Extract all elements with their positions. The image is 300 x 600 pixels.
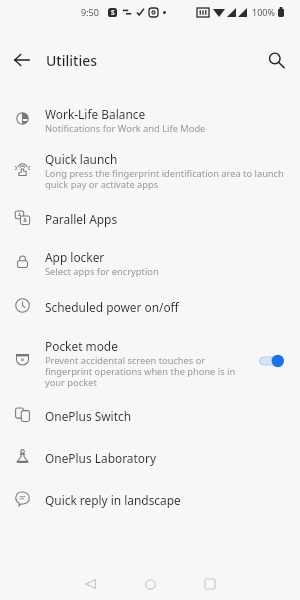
- staticText: Notifications for Work and Life Mode: [45, 122, 206, 135]
- button[interactable]: Pocket mode: [0, 326, 300, 395]
- staticText: Utilities: [46, 51, 98, 70]
- button[interactable]: Parallel Apps: [0, 200, 300, 238]
- button[interactable]: Scheduled power on/off: [0, 288, 300, 326]
- staticText: Pocket mode: [45, 338, 118, 354]
- staticText: OnePlus Switch: [45, 408, 132, 424]
- button[interactable]: Back: [6, 44, 38, 76]
- button[interactable]: Search: [260, 44, 292, 76]
- staticText: Parallel Apps: [45, 211, 118, 227]
- staticText: Quick launch: [45, 151, 118, 167]
- staticText: OnePlus Laboratory: [45, 450, 156, 466]
- staticText: Work-Life Balance: [45, 106, 146, 122]
- button[interactable]: Work-Life Balance: [0, 99, 300, 141]
- button[interactable]: OnePlus Switch: [0, 395, 300, 437]
- staticText: 9:50: [81, 6, 99, 18]
- staticText: 100%: [252, 6, 275, 18]
- button[interactable]: Pocket mode toggle: [259, 354, 291, 368]
- button[interactable]: Recent apps: [195, 569, 225, 599]
- staticText: S: [111, 8, 115, 17]
- staticText: App locker: [45, 249, 105, 265]
- button[interactable]: Home: [135, 569, 165, 599]
- button[interactable]: Back: [75, 569, 105, 599]
- button[interactable]: Quick launch: [0, 141, 300, 200]
- button[interactable]: OnePlus Laboratory: [0, 437, 300, 479]
- button[interactable]: Quick reply in landscape: [0, 479, 300, 521]
- staticText: Long press the fingerprint identificatio…: [45, 167, 287, 191]
- staticText: Quick reply in landscape: [45, 492, 181, 508]
- button[interactable]: App locker: [0, 238, 300, 288]
- staticText: Prevent accidental screen touches or fin…: [45, 354, 242, 389]
- staticText: Scheduled power on/off: [45, 299, 179, 315]
- staticText: Select apps for encryption: [45, 265, 159, 278]
